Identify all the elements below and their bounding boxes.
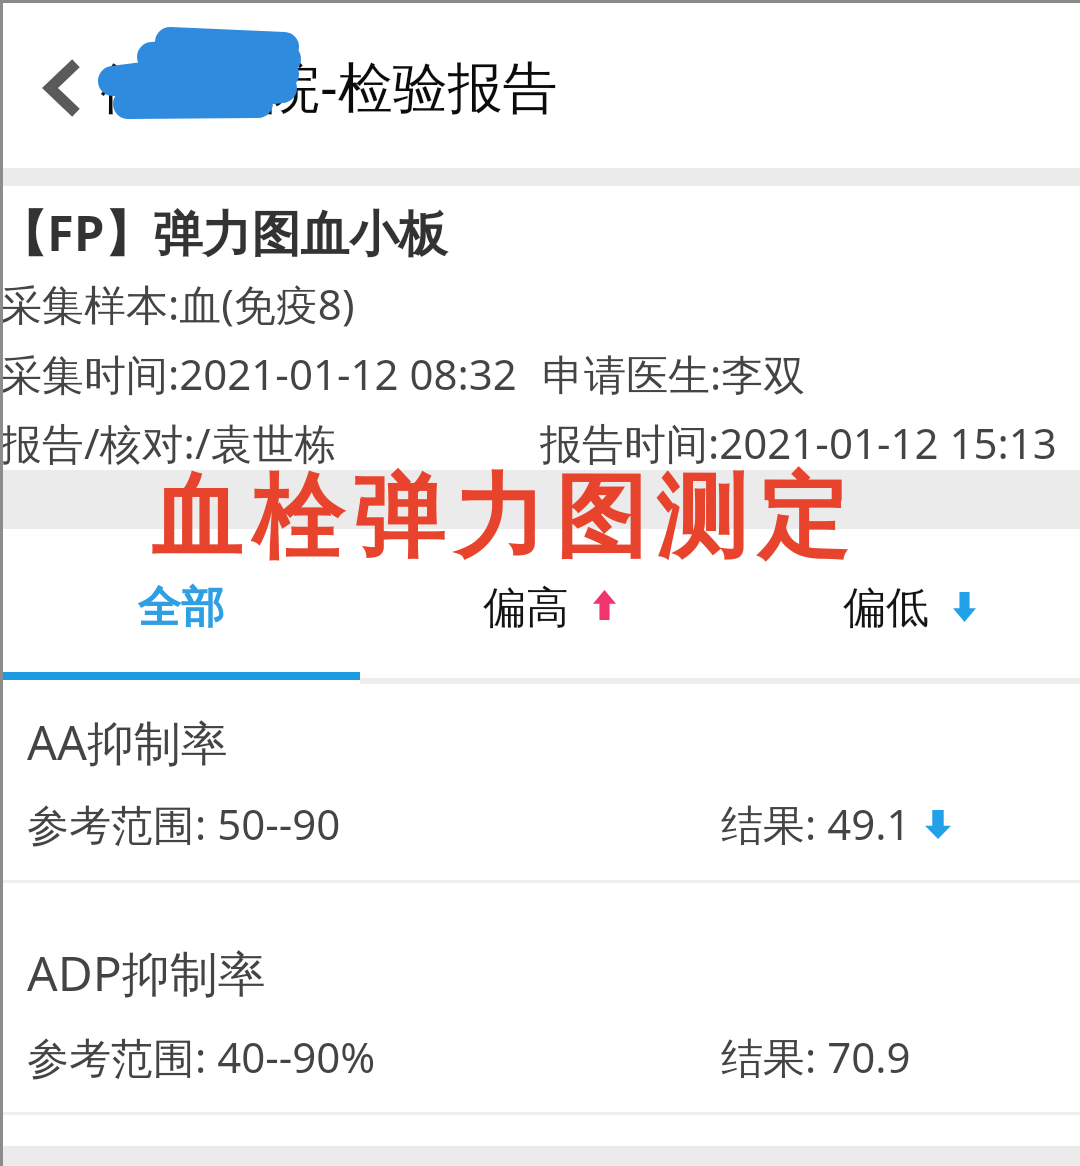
staticText: ADP抑制率 bbox=[27, 940, 266, 1006]
staticText: AA抑制率 bbox=[27, 710, 229, 774]
staticText: 报告/核对:/袁世栋 bbox=[0, 414, 337, 471]
staticText: 采集样本:血(免疫8) bbox=[0, 275, 355, 332]
staticText: 血栓弹力图测定 bbox=[146, 460, 853, 575]
button[interactable]: ADP抑制率 bbox=[0, 881, 1080, 1112]
staticText: 偏高 bbox=[483, 581, 569, 635]
staticText: 参考范围: 40--90% bbox=[27, 1028, 376, 1085]
staticText: 结果: 70.9 bbox=[721, 1028, 911, 1085]
staticText: 全部 bbox=[138, 581, 224, 635]
staticText: 结果: 49.1 bbox=[721, 795, 911, 852]
button[interactable]: AA抑制率 bbox=[0, 683, 1080, 879]
staticText: 偏低 bbox=[843, 581, 929, 635]
staticText: 参考范围: 50--90 bbox=[27, 795, 341, 852]
staticText: 【FP】弹力图血小板 bbox=[0, 199, 448, 266]
button[interactable]: 全部 bbox=[0, 540, 360, 678]
button[interactable]: 偏高 bbox=[360, 540, 720, 678]
button[interactable]: Back bbox=[16, 36, 108, 140]
staticText: 报告时间:2021-01-12 15:13 bbox=[540, 414, 1057, 471]
button[interactable]: 偏低 bbox=[720, 540, 1080, 678]
staticText: 申请医生:李双 bbox=[542, 345, 806, 402]
staticText: 德昌医院-检验报告 bbox=[100, 48, 558, 123]
staticText: 采集时间:2021-01-12 08:32 bbox=[0, 345, 517, 402]
